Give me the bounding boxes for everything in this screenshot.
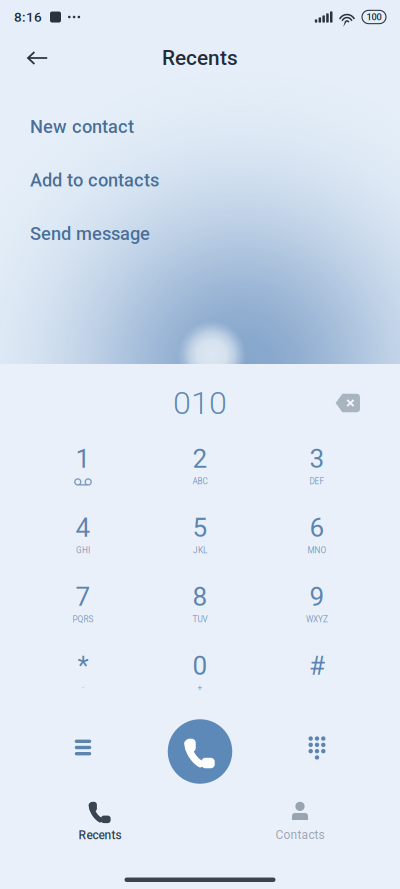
staticText: 8:16 xyxy=(14,9,42,25)
button[interactable]: Add to contacts xyxy=(0,153,400,207)
staticText: · xyxy=(82,684,84,693)
button[interactable]: New contact xyxy=(0,100,400,153)
staticText: 1 xyxy=(75,443,90,474)
button[interactable]: Delete xyxy=(322,382,373,424)
staticText: 5 xyxy=(192,512,207,543)
staticText: TUV xyxy=(192,615,207,624)
staticText: 0 xyxy=(192,650,207,681)
staticText: 8 xyxy=(192,581,207,612)
staticText: Send message xyxy=(30,223,150,244)
button[interactable]: 5 xyxy=(141,511,258,580)
staticText: 3 xyxy=(309,443,324,474)
staticText: DEF xyxy=(309,477,324,486)
staticText: 2 xyxy=(192,443,207,474)
button[interactable]: Call xyxy=(141,718,258,786)
staticText: MNO xyxy=(307,546,326,555)
staticText: Recents xyxy=(78,828,121,842)
staticText: JKL xyxy=(193,546,207,555)
button[interactable]: 7 xyxy=(24,580,141,649)
staticText: PQRS xyxy=(72,615,93,624)
button[interactable]: * xyxy=(24,649,141,718)
staticText: WXYZ xyxy=(306,615,328,624)
staticText: # xyxy=(309,650,325,681)
button[interactable]: 8 xyxy=(141,580,258,649)
staticText: ABC xyxy=(192,477,207,486)
button[interactable]: Contacts xyxy=(200,786,400,845)
button[interactable]: 2 xyxy=(141,442,258,511)
staticText: 4 xyxy=(75,512,90,543)
staticText: Recents xyxy=(162,46,238,70)
staticText: 6 xyxy=(309,512,324,543)
staticText: 010 xyxy=(173,384,227,422)
button[interactable]: 3 xyxy=(258,442,375,511)
staticText: 7 xyxy=(75,581,90,612)
staticText: New contact xyxy=(30,116,134,137)
staticText: * xyxy=(77,650,88,681)
button[interactable]: Recents xyxy=(0,786,200,845)
staticText: Add to contacts xyxy=(30,169,159,191)
staticText: 9 xyxy=(309,581,324,612)
staticText: 100 xyxy=(366,11,381,22)
button[interactable]: 1 xyxy=(24,442,141,511)
button[interactable]: 0 xyxy=(141,649,258,718)
button[interactable]: 4 xyxy=(24,511,141,580)
staticText: Contacts xyxy=(275,828,324,842)
staticText: GHI xyxy=(76,546,90,555)
button[interactable]: 9 xyxy=(258,580,375,649)
button[interactable]: Send message xyxy=(0,207,400,260)
staticText: + xyxy=(197,684,202,693)
button[interactable]: 6 xyxy=(258,511,375,580)
button[interactable]: Back xyxy=(15,40,60,76)
button[interactable]: Call log xyxy=(24,718,141,786)
button[interactable]: # xyxy=(258,649,375,718)
button[interactable]: Keypad xyxy=(258,718,375,786)
